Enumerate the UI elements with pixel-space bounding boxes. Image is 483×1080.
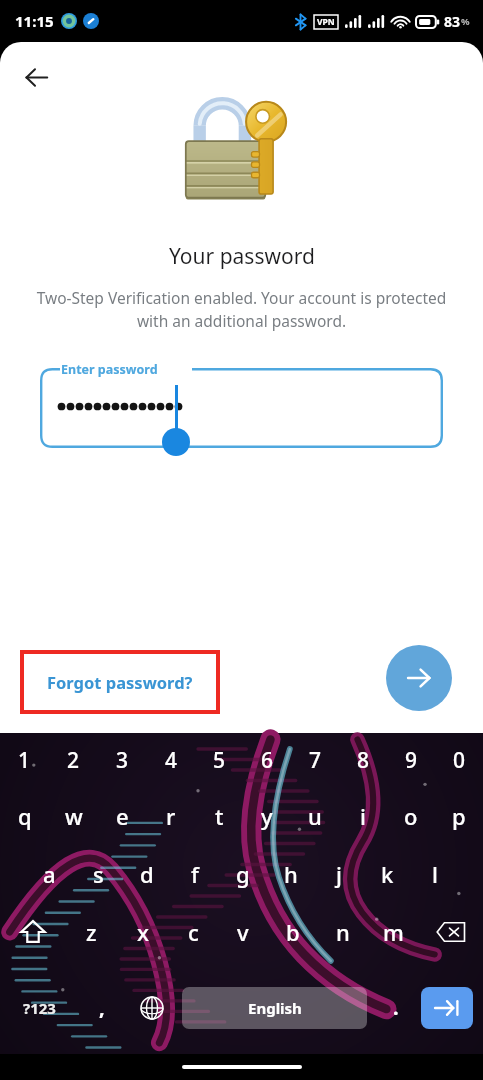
staticText: j [336,859,342,889]
button[interactable]: y [243,787,291,845]
button[interactable]: Enter password [40,368,443,448]
button[interactable]: 5 [195,733,243,787]
staticText: x [137,917,149,947]
staticText: z [86,917,97,947]
button[interactable]: c [168,903,218,961]
staticText: VPN [317,16,335,28]
staticText: 5 [213,746,226,775]
staticText: % [461,15,470,28]
staticText: u [308,801,322,831]
staticText: Two-Step Verification enabled. Your acco… [36,287,447,332]
button[interactable]: 1 [0,733,49,787]
button[interactable]: r [147,787,195,845]
staticText: q [18,801,32,831]
staticText: 7 [309,746,322,775]
button[interactable]: a [25,845,74,903]
staticText: 11:15 [15,11,54,31]
staticText: v [237,917,249,947]
staticText: 9 [405,746,418,775]
staticText: , [99,994,105,1021]
button[interactable]: b [268,903,318,961]
staticText: i [360,801,366,831]
button[interactable]: 2 [49,733,98,787]
staticText: 3 [116,746,129,775]
button[interactable]: Backspace [418,903,483,961]
staticText: a [43,859,56,889]
button[interactable]: w [49,787,98,845]
button[interactable]: j [315,845,363,903]
button[interactable]: 6 [243,733,291,787]
staticText: Your password [169,242,315,271]
button[interactable]: k [363,845,411,903]
button[interactable]: . [371,961,421,1054]
button[interactable]: u [291,787,339,845]
staticText: e [116,801,129,831]
button[interactable]: x [117,903,168,961]
staticText: y [261,801,273,831]
button[interactable]: 0 [435,733,483,787]
button[interactable]: o [387,787,435,845]
staticText: 1 [18,746,31,775]
staticText: o [404,801,418,831]
button[interactable]: 3 [98,733,147,787]
button[interactable]: v [218,903,268,961]
button[interactable]: Next [386,645,452,711]
button[interactable]: g [219,845,267,903]
staticText: d [140,859,154,889]
staticText: English [248,998,302,1018]
button[interactable]: 9 [387,733,435,787]
staticText: Forgot password? [47,671,193,693]
staticText: ?123 [23,998,56,1018]
staticText: 2 [67,746,80,775]
staticText: Enter password [61,361,158,378]
button[interactable]: z [66,903,117,961]
staticText: 6 [261,746,274,775]
staticText: g [236,859,250,889]
button[interactable]: h [267,845,315,903]
button[interactable]: m [368,903,418,961]
button[interactable]: t [195,787,243,845]
staticText: m [383,917,404,947]
button[interactable]: s [74,845,123,903]
button[interactable]: , [78,961,126,1054]
staticText: s [93,859,104,889]
button[interactable]: f [171,845,219,903]
staticText: p [452,801,466,831]
button[interactable]: 8 [339,733,387,787]
button[interactable]: n [318,903,368,961]
staticText: 8 [357,746,370,775]
button[interactable]: 7 [291,733,339,787]
staticText: l [432,859,438,889]
button[interactable]: Back [13,54,59,100]
button[interactable]: p [435,787,483,845]
button[interactable]: e [98,787,147,845]
staticText: . [393,994,399,1021]
staticText: w [65,801,83,831]
button[interactable]: English [182,987,367,1029]
staticText: k [381,859,394,889]
button[interactable]: d [123,845,171,903]
button[interactable]: Shift [0,903,66,961]
staticText: r [166,801,176,831]
staticText: t [215,801,224,831]
staticText: c [188,917,199,947]
button[interactable]: ?123 [0,961,78,1054]
button[interactable]: Enter [421,987,473,1029]
button[interactable]: q [0,787,49,845]
button[interactable]: i [339,787,387,845]
button[interactable]: Change language [126,961,178,1054]
staticText: h [284,859,298,889]
button[interactable]: l [411,845,459,903]
staticText: 83 [444,12,461,31]
staticText: 4 [165,746,178,775]
staticText: n [336,917,350,947]
staticText: f [191,859,199,889]
button[interactable]: 4 [147,733,195,787]
staticText: b [286,917,300,947]
button[interactable]: Forgot password? [22,652,218,712]
staticText: 0 [453,746,466,775]
